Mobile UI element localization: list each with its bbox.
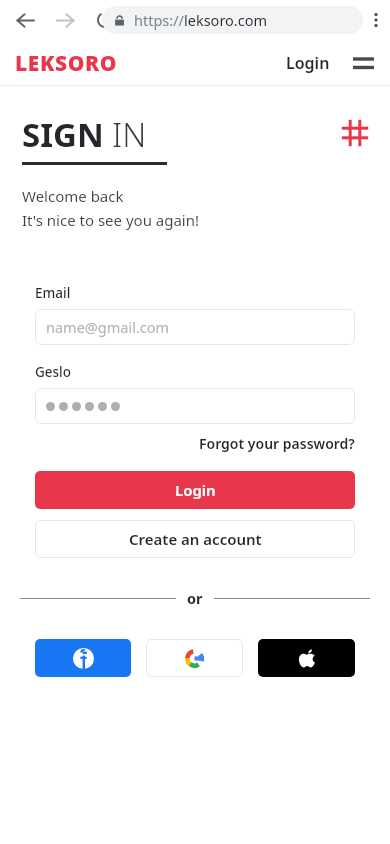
button[interactable]: Sign in with Apple — [258, 639, 355, 677]
button[interactable]: Forgot your password? — [199, 434, 355, 453]
button[interactable]: LEKSORO — [15, 49, 118, 78]
staticText: It's nice to see you again! — [22, 210, 200, 230]
staticText: or — [187, 588, 203, 608]
button[interactable]: Sign in with Google — [146, 639, 243, 677]
button[interactable]: Login — [35, 471, 355, 509]
button[interactable]: Grid — [339, 117, 371, 149]
button[interactable]: Menu — [350, 50, 376, 76]
staticText: Geslo — [35, 363, 72, 381]
button[interactable]: More options — [362, 6, 390, 34]
staticText: https:// — [134, 10, 184, 30]
button[interactable]: Forward — [48, 3, 82, 37]
button[interactable]: Sign in with Facebook — [35, 639, 131, 677]
staticText: Login — [286, 52, 330, 74]
staticText: IN — [112, 112, 147, 157]
staticText: Login — [175, 480, 216, 500]
staticText: name@gmail.com — [46, 317, 170, 337]
staticText: Create an account — [129, 529, 262, 549]
staticText: Email — [35, 284, 71, 302]
button[interactable]: Login — [282, 48, 334, 78]
button[interactable]: https:// — [102, 6, 363, 34]
button[interactable]: Create an account — [35, 520, 355, 558]
staticText: Welcome back — [22, 186, 124, 206]
button[interactable]: Reload — [88, 3, 122, 37]
staticText: SIGN — [22, 112, 104, 157]
button[interactable]: Back — [8, 3, 42, 37]
button[interactable] — [35, 388, 355, 424]
button[interactable]: name@gmail.com — [35, 309, 355, 345]
staticText: leksoro.com — [184, 10, 268, 30]
